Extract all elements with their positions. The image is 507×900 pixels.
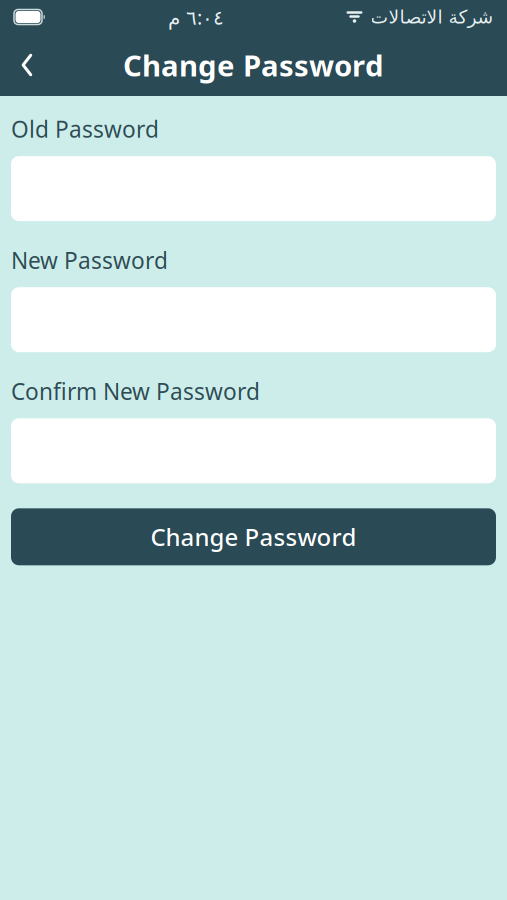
staticText: New Password bbox=[11, 245, 168, 275]
staticText: Old Password bbox=[11, 114, 159, 144]
staticText: ٦:٠٤ م bbox=[167, 4, 223, 30]
staticText: Confirm New Password bbox=[11, 376, 260, 406]
staticText: Change Password bbox=[150, 521, 356, 553]
staticText: شركة الاتصالات bbox=[370, 6, 493, 28]
button[interactable]: Change Password bbox=[11, 508, 496, 565]
button[interactable]: Back bbox=[0, 34, 54, 96]
staticText: Change Password bbox=[123, 45, 384, 84]
